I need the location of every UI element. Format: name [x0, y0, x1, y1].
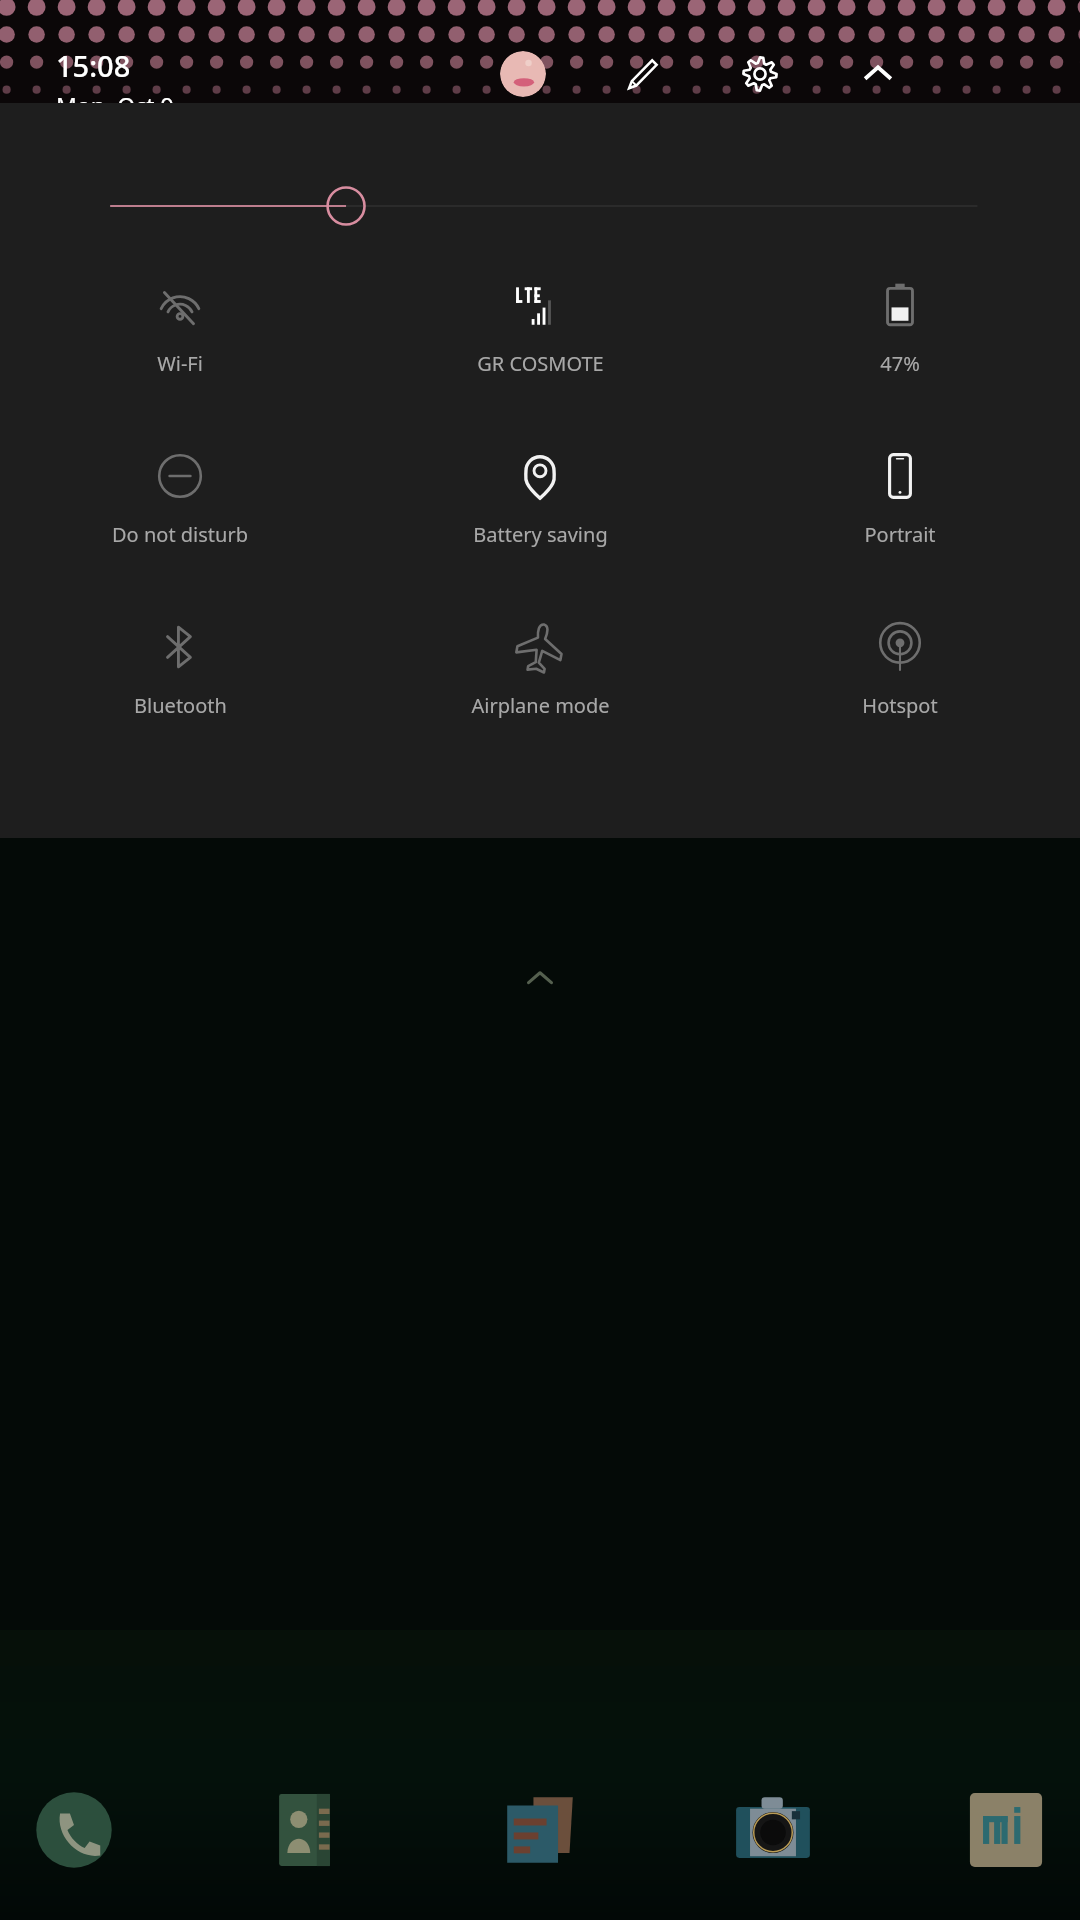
- staticText: Wi-Fi: [157, 350, 203, 377]
- staticText: Mon, Oct 9: [56, 90, 174, 103]
- staticText: 47%: [880, 350, 920, 377]
- button[interactable]: Airplane mode: [360, 616, 720, 719]
- staticText: Airplane mode: [471, 692, 610, 719]
- button[interactable]: Settings: [736, 50, 784, 98]
- staticText: Bluetooth: [134, 692, 227, 719]
- button[interactable]: Bluetooth: [0, 616, 360, 719]
- button[interactable]: Camera: [725, 1782, 821, 1878]
- button[interactable]: Do not disturb: [0, 445, 360, 548]
- staticText: GR COSMOTE: [477, 350, 604, 377]
- button[interactable]: Wi-Fi: [0, 274, 360, 377]
- button[interactable]: Edit: [618, 50, 666, 98]
- button[interactable]: Portrait: [720, 445, 1080, 548]
- button[interactable]: App drawer: [518, 956, 562, 1000]
- button[interactable]: Hotspot: [720, 616, 1080, 719]
- staticText: Battery saving: [473, 521, 608, 548]
- staticText: Portrait: [864, 521, 936, 548]
- button[interactable]: Brightness: [0, 178, 1080, 234]
- button[interactable]: Contacts: [259, 1782, 355, 1878]
- button[interactable]: Mi Store: [958, 1782, 1054, 1878]
- button[interactable]: GR COSMOTE: [360, 274, 720, 377]
- button[interactable]: Battery saving: [360, 445, 720, 548]
- button[interactable]: User profile: [500, 51, 546, 97]
- staticText: Hotspot: [862, 692, 938, 719]
- button[interactable]: Messages: [492, 1782, 588, 1878]
- button[interactable]: Collapse: [854, 50, 902, 98]
- staticText: 15:08: [56, 46, 131, 85]
- staticText: Do not disturb: [112, 521, 248, 548]
- button[interactable]: Phone: [26, 1782, 122, 1878]
- button[interactable]: 47%: [720, 274, 1080, 377]
